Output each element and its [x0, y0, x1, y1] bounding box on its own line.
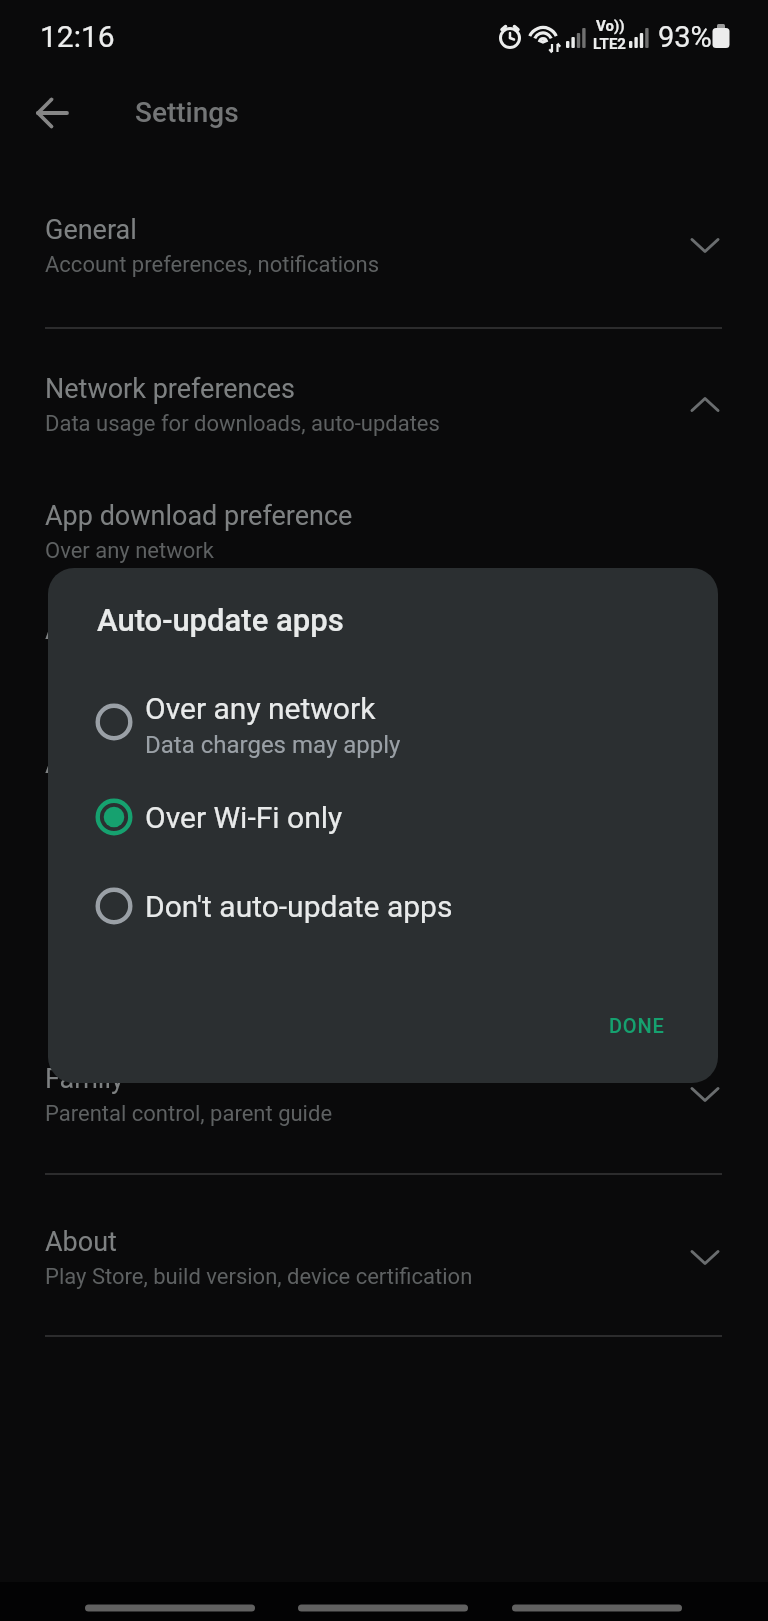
staticText: 93%	[658, 20, 712, 54]
staticText: General	[45, 214, 137, 246]
staticText: 12:16	[40, 19, 115, 54]
staticText: Family	[45, 1063, 124, 1095]
staticText: Auto-update apps	[45, 614, 258, 646]
staticText: DONE	[609, 1014, 665, 1037]
staticText: Network preferences	[45, 373, 295, 405]
staticText: Auto-update apps	[97, 602, 344, 638]
staticText: Play Store, build version, device certif…	[45, 1264, 473, 1290]
staticText: LTE2	[593, 35, 626, 53]
staticText: Vo))	[596, 17, 625, 35]
button[interactable]: General	[0, 200, 768, 300]
button[interactable]	[36, 97, 70, 129]
button[interactable]: App download preference	[0, 486, 768, 586]
button[interactable]: Don't auto-update apps	[70, 861, 680, 951]
staticText: Data usage for downloads, auto-updates	[45, 411, 440, 437]
staticText: About	[45, 1226, 117, 1258]
staticText: Auto-play videos	[45, 748, 243, 780]
staticText: Parental control, parent guide	[45, 1101, 333, 1127]
button[interactable]: About	[0, 1212, 768, 1312]
staticText: Account preferences, notifications	[45, 252, 380, 278]
staticText: Don't auto-update apps	[145, 889, 453, 924]
button[interactable]: Network preferences	[0, 359, 768, 459]
staticText: Over any network	[145, 691, 376, 726]
staticText: Settings	[135, 96, 239, 129]
button[interactable]: DONE	[592, 1000, 682, 1050]
button[interactable]: Over Wi-Fi only	[70, 772, 680, 862]
staticText: Data charges may apply	[145, 731, 401, 759]
button[interactable]: Over any network	[70, 677, 680, 767]
staticText: Over Wi-Fi only	[145, 800, 343, 835]
staticText: App download preference	[45, 500, 353, 532]
button[interactable]: Family	[0, 1049, 768, 1149]
staticText: Over any network	[45, 538, 214, 564]
